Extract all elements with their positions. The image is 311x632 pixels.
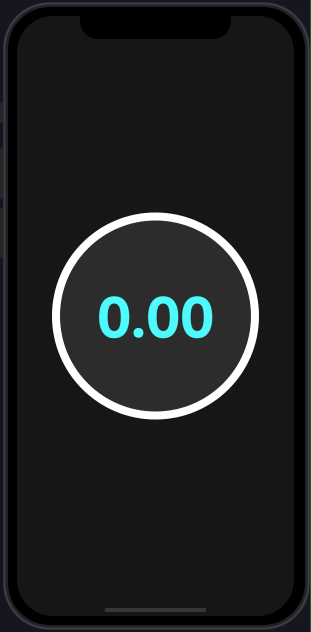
staticText: 0.00 (97, 280, 214, 358)
button[interactable]: 0.00 (52, 212, 259, 419)
